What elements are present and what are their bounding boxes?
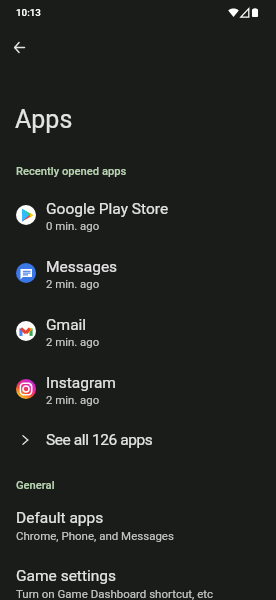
- staticText: 2 min. ago: [46, 393, 100, 406]
- staticText: 2 min. ago: [46, 277, 100, 290]
- staticText: See all 126 apps: [46, 431, 153, 449]
- button[interactable]: Instagram: [0, 360, 276, 418]
- button[interactable]: Gmail: [0, 302, 276, 360]
- staticText: General: [16, 479, 55, 492]
- staticText: Turn on Game Dashboard shortcut, etc: [16, 587, 214, 600]
- staticText: Messages: [46, 258, 118, 276]
- staticText: Game settings: [16, 567, 117, 585]
- staticText: 2 min. ago: [46, 335, 100, 348]
- button[interactable]: See all 126 apps: [0, 420, 276, 460]
- staticText: 0 min. ago: [46, 219, 100, 232]
- staticText: Chrome, Phone, and Messages: [16, 529, 174, 542]
- staticText: Google Play Store: [46, 200, 169, 218]
- staticText: 10:13: [16, 7, 41, 18]
- button[interactable]: Default apps: [0, 502, 276, 552]
- button[interactable]: Game settings: [0, 560, 276, 600]
- staticText: Gmail: [46, 316, 87, 334]
- button[interactable]: Navigate up: [1, 29, 37, 65]
- staticText: Default apps: [16, 509, 104, 527]
- staticText: Apps: [15, 105, 73, 134]
- button[interactable]: Google Play Store: [0, 186, 276, 244]
- staticText: Recently opened apps: [16, 165, 127, 178]
- staticText: Instagram: [46, 374, 116, 392]
- button[interactable]: Messages: [0, 244, 276, 302]
